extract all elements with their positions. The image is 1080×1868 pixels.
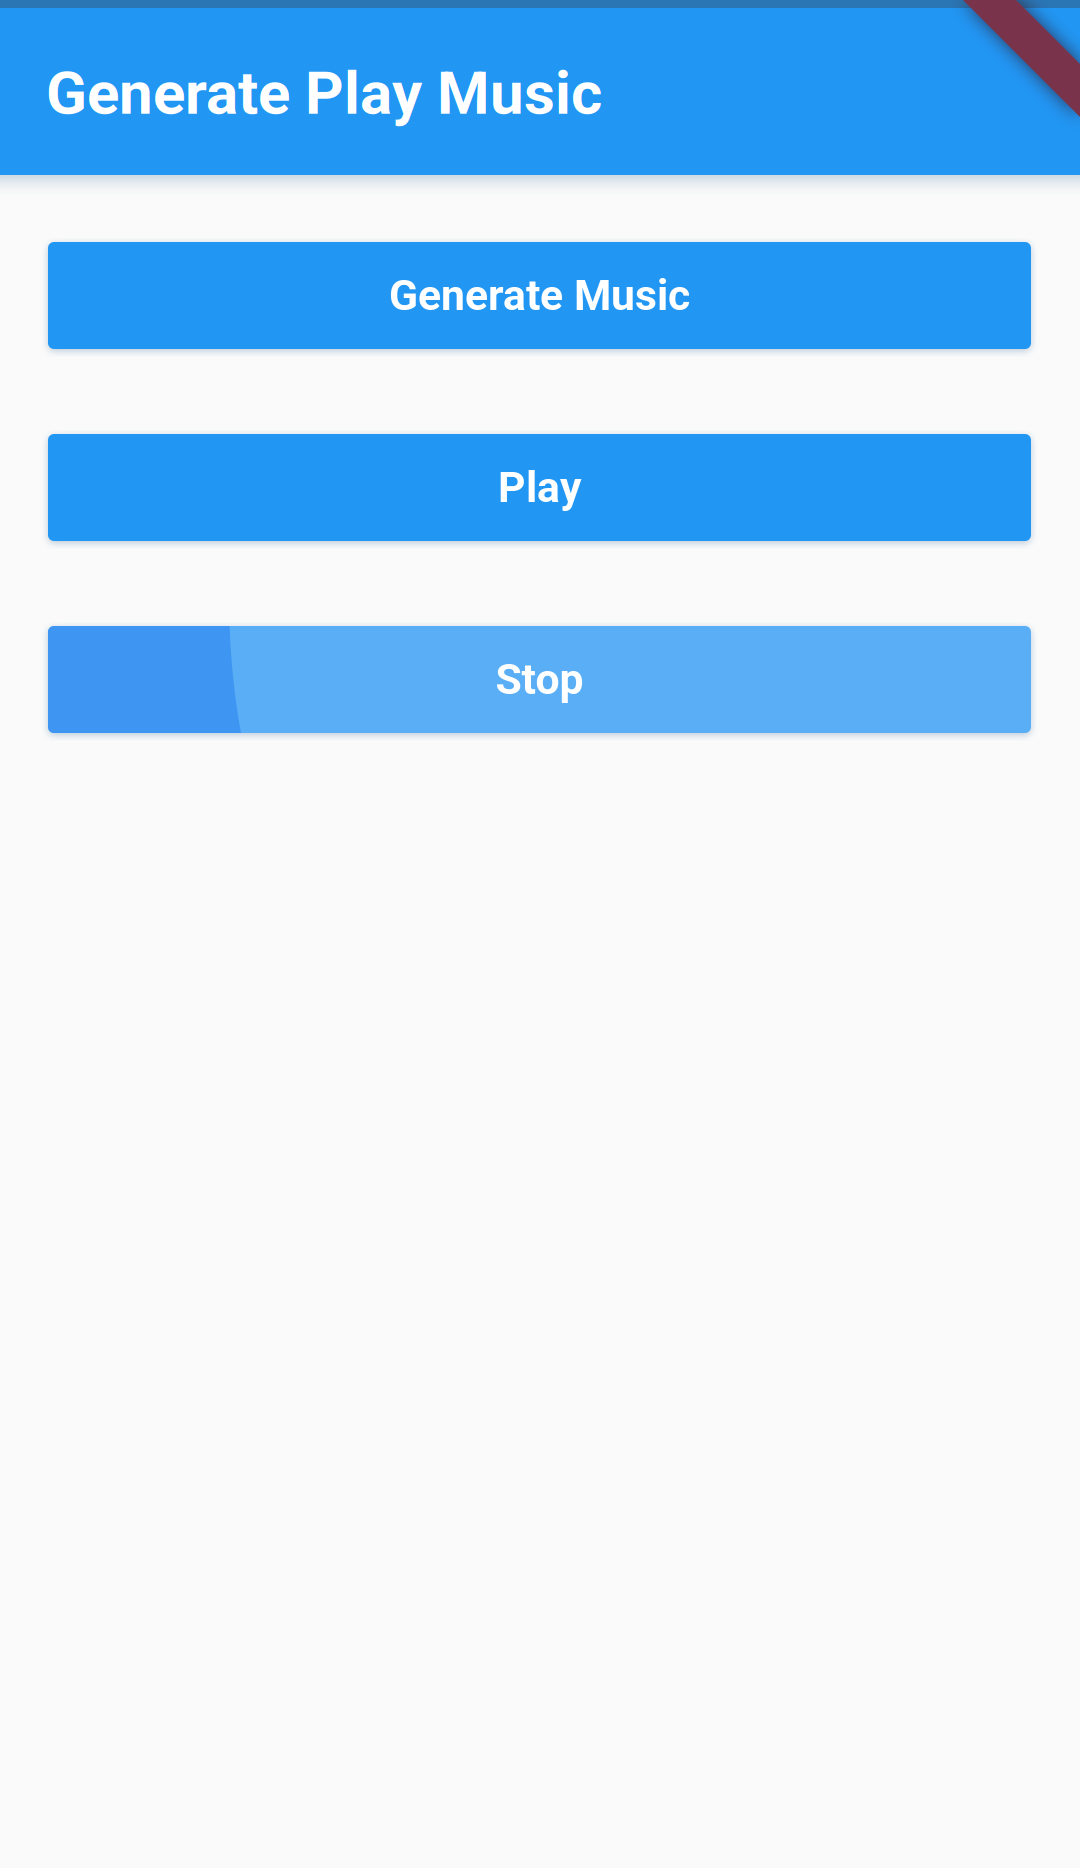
button[interactable]: Stop [48,626,1031,733]
staticText: Play [498,462,581,512]
button[interactable]: Generate Music [48,242,1031,349]
staticText: Stop [495,654,583,704]
button[interactable]: Play [48,434,1031,541]
staticText: Generate Play Music [46,58,602,128]
staticText: Generate Music [389,270,690,320]
